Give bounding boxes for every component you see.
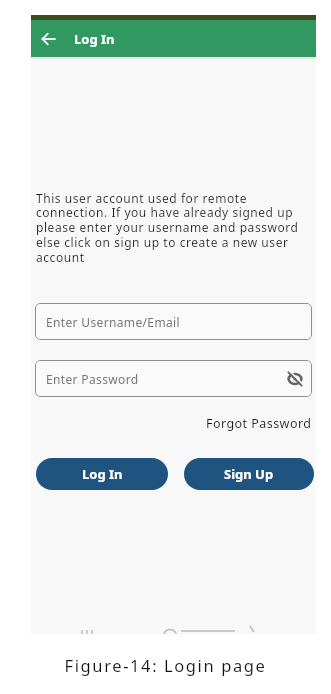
staticText: Enter Username/Email <box>46 314 180 330</box>
button[interactable]: Sign Up <box>184 458 314 490</box>
button[interactable]: Enter Password <box>35 360 312 397</box>
button[interactable]: Log In <box>36 458 168 490</box>
button[interactable]: Enter Username/Email <box>35 303 312 340</box>
button[interactable]: Forgot Password <box>191 414 312 432</box>
staticText: Log In <box>82 465 123 483</box>
staticText: Log In <box>74 30 115 48</box>
button[interactable] <box>31 20 65 57</box>
staticText: Sign Up <box>224 465 274 483</box>
staticText: This user account used for remote connec… <box>36 190 313 266</box>
staticText: Enter Password <box>46 371 139 387</box>
staticText: Figure-14: Login page <box>0 654 331 676</box>
button[interactable] <box>287 371 303 387</box>
staticText: Forgot Password <box>206 415 312 432</box>
